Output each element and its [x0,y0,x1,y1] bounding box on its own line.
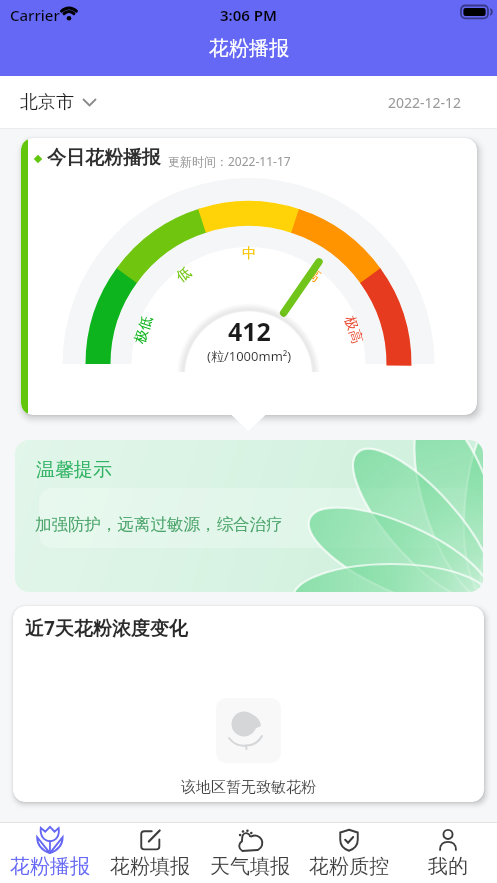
staticText: 我的 [428,854,468,879]
staticText: 中 [242,245,256,263]
staticText: (粒/1000mm²) [207,347,292,365]
staticText: 该地区暂无致敏花粉 [181,778,316,797]
button[interactable]: 北京市 [20,91,96,114]
staticText: 更新时间：2022-11-17 [168,153,291,169]
staticText: 2022-12-12 [388,93,462,112]
staticText: 低 [173,264,195,286]
staticText: 412 [228,314,271,344]
button[interactable]: 天气填报 [200,823,299,883]
staticText: 花粉质控 [309,854,389,879]
staticText: 天气填报 [210,854,290,879]
button[interactable]: 温馨提示 [15,440,483,592]
staticText: 极高 [340,314,366,346]
staticText: 3:06 PM [220,5,277,25]
staticText: 北京市 [20,91,74,114]
button[interactable]: 我的 [398,823,497,883]
staticText: 花粉填报 [110,854,190,879]
staticText: 温馨提示 [36,458,112,482]
staticText: 花粉播报 [10,854,90,879]
button[interactable]: 花粉播报 [0,823,100,883]
staticText: 近7天花粉浓度变化 [25,615,188,641]
staticText: 花粉播报 [209,36,289,61]
staticText: Carrier [10,5,60,25]
staticText: 加强防护，远离过敏源，综合治疗 [35,514,283,535]
staticText: 今日花粉播报 [47,146,161,170]
button[interactable]: 今日花粉播报 [21,138,477,415]
staticText: 极低 [131,314,157,346]
staticText: 高 [302,264,324,286]
button[interactable]: 花粉填报 [100,823,200,883]
button[interactable]: 花粉质控 [299,823,398,883]
